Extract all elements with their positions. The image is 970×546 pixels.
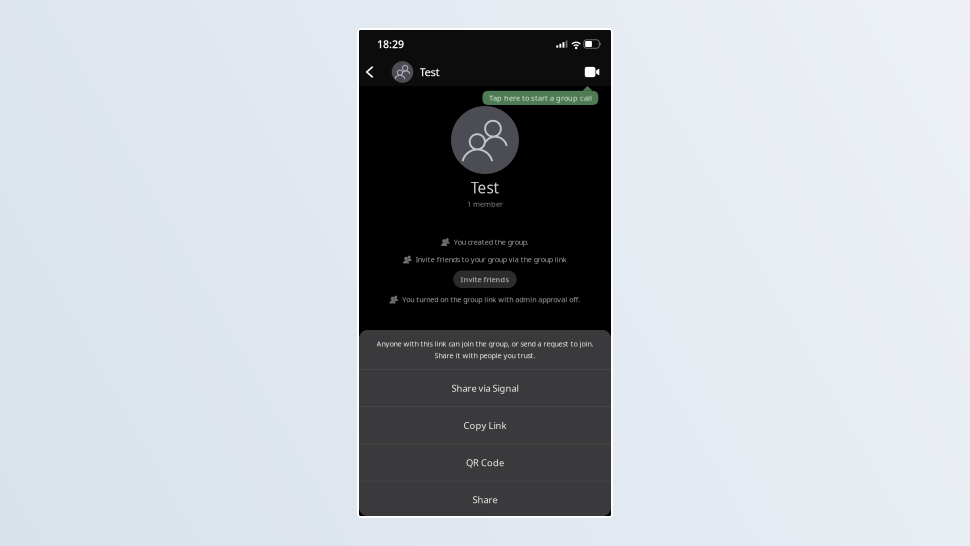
button[interactable]: Copy Link <box>359 407 611 444</box>
staticText: Share <box>472 493 497 506</box>
button[interactable]: Share <box>359 481 611 518</box>
button[interactable]: QR Code <box>359 444 611 481</box>
staticText: Share it with people you trust. <box>434 351 535 360</box>
staticText: Test <box>419 64 439 80</box>
staticText: Test <box>470 177 499 198</box>
button[interactable]: Start video call <box>581 58 599 86</box>
staticText: QR Code <box>466 456 504 469</box>
staticText: Anyone with this link can join the group… <box>376 339 593 349</box>
staticText: 18:29 <box>377 37 404 51</box>
staticText: Copy Link <box>463 419 506 432</box>
staticText: Share via Signal <box>451 382 518 394</box>
button[interactable]: Share via Signal <box>359 370 611 406</box>
button[interactable]: Test <box>392 58 439 86</box>
staticText: 1 member <box>467 199 503 209</box>
button[interactable]: Invite friends <box>453 271 517 288</box>
staticText: You turned on the group link with admin … <box>402 295 580 304</box>
staticText: Invite friends <box>460 274 509 284</box>
staticText: You created the group. <box>454 237 529 247</box>
staticText: Invite friends to your group via the gro… <box>416 255 567 264</box>
staticText: Tap here to start a group call <box>489 93 592 103</box>
button[interactable]: Back <box>366 58 384 86</box>
